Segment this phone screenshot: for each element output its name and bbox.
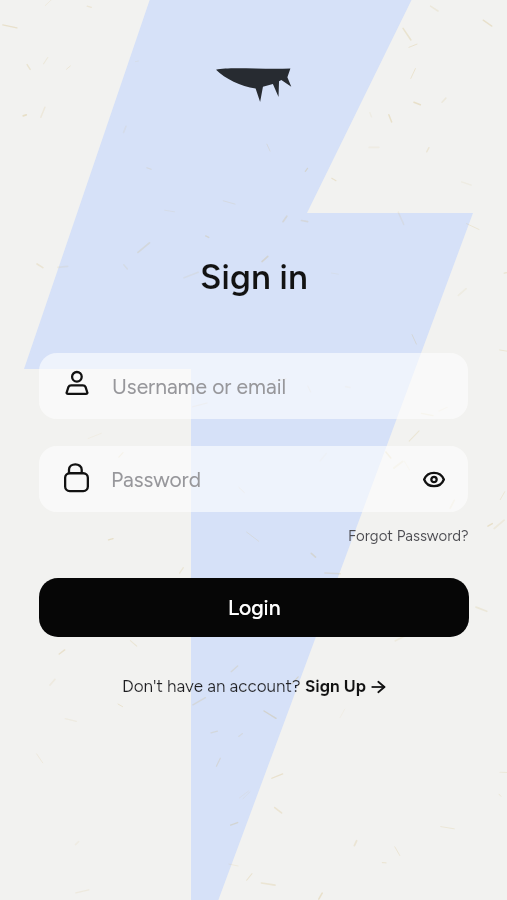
staticText: Sign in xyxy=(200,256,308,298)
button[interactable]: Forgot Password? xyxy=(346,524,471,548)
staticText: Login xyxy=(228,595,281,620)
button[interactable]: Show password xyxy=(408,453,460,505)
button[interactable]: Sign Up xyxy=(305,676,385,696)
staticText: Forgot Password? xyxy=(348,527,469,545)
staticText: Don't have an account? xyxy=(122,676,305,696)
button[interactable]: Username or email xyxy=(39,353,468,419)
button[interactable]: Password xyxy=(39,446,468,512)
staticText: Sign Up xyxy=(305,676,366,696)
staticText: Username or email xyxy=(112,374,287,399)
staticText: Password xyxy=(111,467,202,492)
button[interactable]: Login xyxy=(39,578,469,637)
